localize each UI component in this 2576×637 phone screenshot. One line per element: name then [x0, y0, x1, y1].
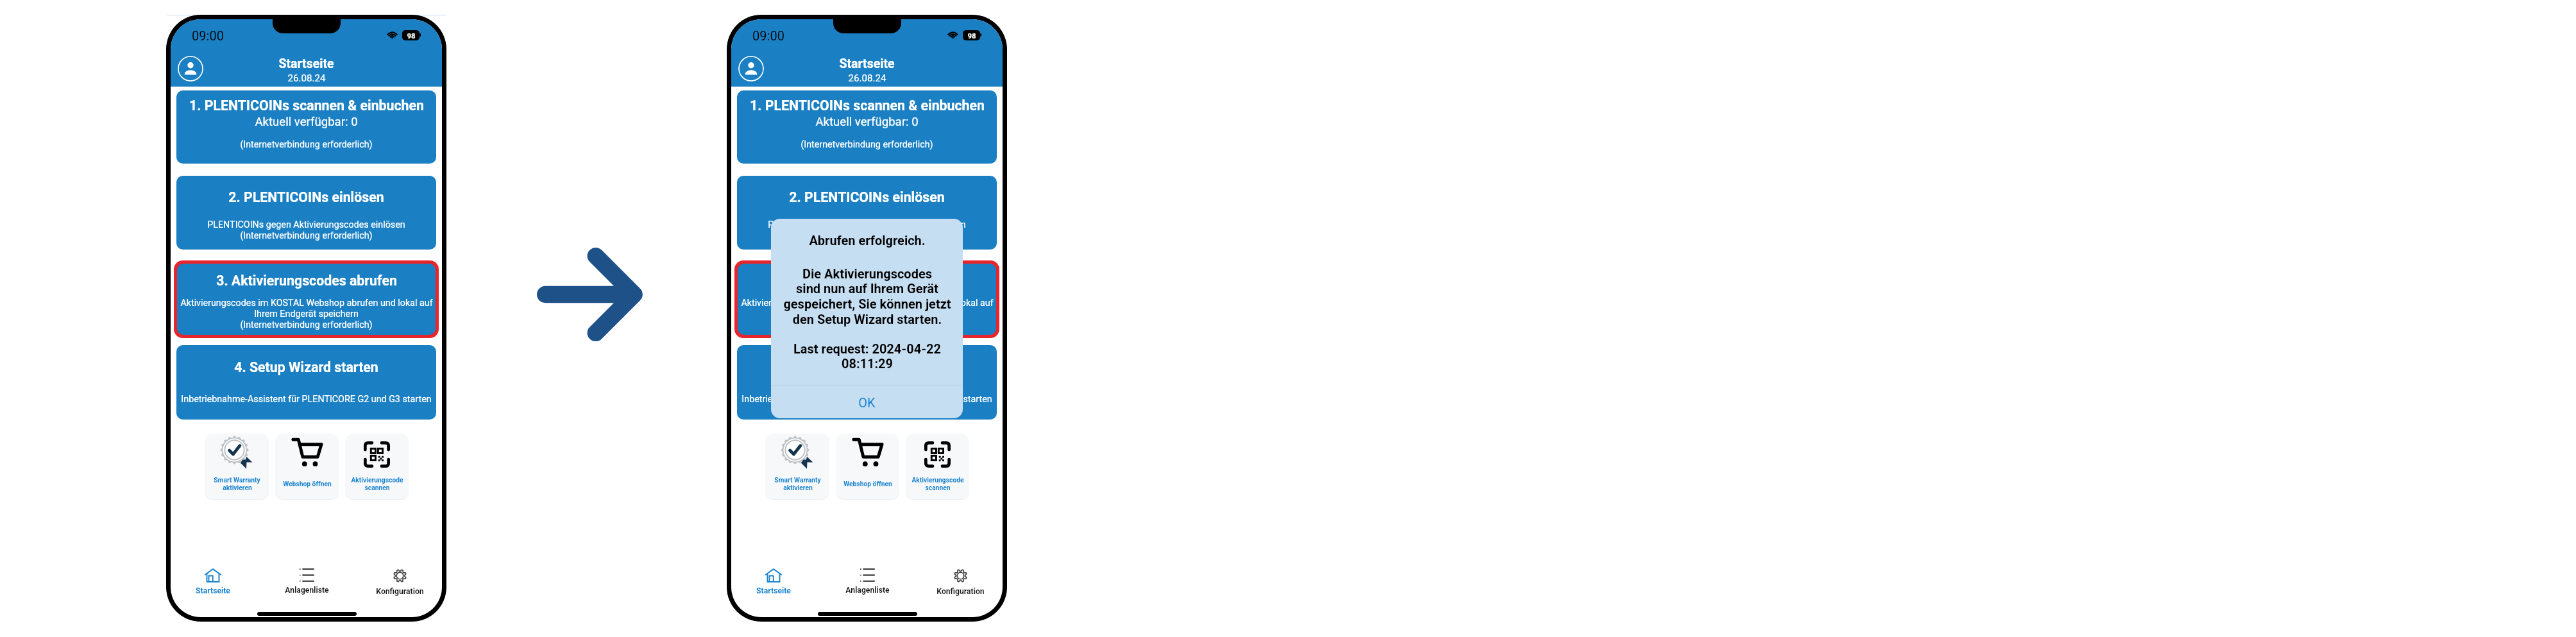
staticText: Anlagenliste: [845, 586, 890, 595]
staticText: Webshop öffnen: [843, 480, 892, 488]
button[interactable]: Webshop öffnen: [275, 434, 339, 498]
button[interactable]: Anlagenliste: [831, 565, 903, 599]
staticText: Startseite: [278, 56, 334, 71]
staticText: scannen: [925, 484, 951, 491]
staticText: Aktuell verfügbar: 0: [255, 115, 358, 129]
staticText: Last request: 2024-04-22 08:11:29: [793, 341, 941, 371]
button[interactable]: Aktivierungscode: [906, 434, 969, 498]
staticText: 1. PLENTICOINs scannen & einbuchen: [750, 98, 985, 114]
staticText: aktivieren: [223, 484, 252, 491]
staticText: Aktivierungscodes im KOSTAL Webshop abru…: [741, 298, 994, 309]
staticText: Inbetriebnahme-Assistent für PLENTICORE …: [181, 394, 432, 405]
staticText: Smart Warranty: [774, 476, 821, 484]
staticText: PLENTICOINs gegen Aktivierungscodes einl…: [768, 219, 966, 230]
button[interactable]: 1. PLENTICOINs scannen & einbuchen: [176, 90, 436, 164]
staticText: 09:00: [752, 28, 784, 43]
staticText: 26.08.24: [848, 72, 886, 84]
button[interactable]: Startseite: [177, 565, 249, 599]
staticText: Startseite: [756, 586, 791, 595]
button[interactable]: 3. Aktivierungscodes abrufen: [177, 264, 436, 335]
staticText: 2. PLENTICOINs einlösen: [228, 189, 384, 205]
button[interactable]: 4. Setup Wizard starten: [737, 345, 997, 420]
staticText: (Internetverbindung erforderlich): [240, 230, 373, 241]
staticText: Smart Warranty: [214, 476, 260, 484]
staticText: 26.08.24: [287, 72, 326, 84]
staticText: PLENTICOINs gegen Aktivierungscodes einl…: [207, 219, 405, 230]
staticText: 1. PLENTICOINs scannen & einbuchen: [189, 98, 424, 114]
button[interactable]: 4. Setup Wizard starten: [176, 345, 436, 420]
button[interactable]: Aktivierungscode: [345, 434, 409, 498]
button[interactable]: Smart Warranty: [765, 434, 829, 498]
button[interactable]: Konfiguration: [364, 565, 436, 599]
staticText: 3. Aktivierungscodes abrufen: [777, 273, 958, 289]
staticText: Aktivierungscode: [911, 476, 964, 484]
button[interactable]: 1. PLENTICOINs scannen & einbuchen: [737, 90, 997, 164]
staticText: 98: [407, 31, 416, 40]
staticText: 4. Setup Wizard starten: [234, 359, 378, 375]
staticText: (Internetverbindung erforderlich): [801, 319, 933, 330]
staticText: 09:00: [192, 28, 224, 43]
staticText: Webshop öffnen: [283, 480, 332, 488]
staticText: (Internetverbindung erforderlich): [240, 319, 373, 330]
staticText: Konfiguration: [376, 587, 424, 596]
staticText: 4. Setup Wizard starten: [795, 359, 939, 375]
staticText: Startseite: [839, 56, 895, 71]
staticText: Startseite: [196, 586, 230, 595]
staticText: Konfiguration: [936, 587, 985, 596]
staticText: Abrufen erfolgreich.: [809, 233, 926, 248]
staticText: Inbetriebnahme-Assistent für PLENTICORE …: [741, 394, 992, 405]
staticText: 3. Aktivierungscodes abrufen: [216, 273, 397, 289]
button[interactable]: Konfiguration: [924, 565, 996, 599]
staticText: Aktuell verfügbar: 0: [815, 115, 919, 129]
staticText: (Internetverbindung erforderlich): [801, 139, 933, 150]
staticText: scannen: [364, 484, 390, 491]
button[interactable]: OK: [771, 386, 963, 418]
staticText: Ihrem Endgerät speichern: [815, 309, 919, 319]
staticText: (Internetverbindung erforderlich): [801, 230, 933, 241]
button[interactable]: 2. PLENTICOINs einlösen: [176, 176, 436, 250]
button[interactable]: 3. Aktivierungscodes abrufen: [738, 264, 996, 335]
button[interactable]: Smart Warranty: [205, 434, 269, 498]
button[interactable]: Webshop öffnen: [836, 434, 899, 498]
staticText: Die Aktivierungscodes sind nun auf Ihrem…: [783, 266, 951, 327]
staticText: Anlagenliste: [285, 586, 329, 595]
button[interactable]: 2. PLENTICOINs einlösen: [737, 176, 997, 250]
staticText: Aktivierungscode: [351, 476, 403, 484]
staticText: 98: [967, 31, 976, 40]
staticText: Ihrem Endgerät speichern: [254, 309, 359, 319]
button[interactable]: Anlagenliste: [271, 565, 343, 599]
button[interactable]: Startseite: [738, 565, 809, 599]
staticText: aktivieren: [783, 484, 813, 491]
staticText: Aktivierungscodes im KOSTAL Webshop abru…: [180, 298, 433, 309]
staticText: OK: [858, 395, 876, 410]
button[interactable]: Profil: [178, 56, 203, 81]
staticText: 2. PLENTICOINs einlösen: [789, 189, 945, 205]
staticText: (Internetverbindung erforderlich): [240, 139, 373, 150]
button[interactable]: Profil: [738, 56, 764, 81]
